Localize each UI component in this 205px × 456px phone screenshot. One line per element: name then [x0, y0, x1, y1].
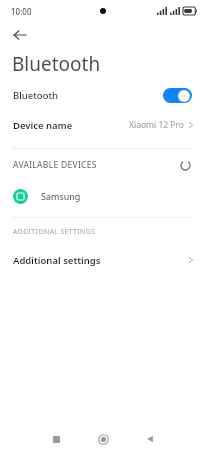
button[interactable]: Bluetooth toggle [163, 88, 192, 103]
staticText: 10:00 [11, 6, 32, 17]
button[interactable]: Additional settings [0, 246, 205, 274]
staticText: Xiaomi 12 Pro [129, 119, 184, 131]
staticText: Additional settings [13, 254, 101, 267]
staticText: Bluetooth [12, 51, 101, 77]
staticText: Bluetooth [13, 89, 59, 102]
button[interactable]: Back [7, 22, 33, 48]
button[interactable]: Home [90, 426, 116, 452]
button[interactable]: Back [137, 426, 163, 452]
button[interactable]: Samsung [0, 181, 205, 211]
button[interactable]: Bluetooth [0, 80, 205, 110]
staticText: AVAILABLE DEVICES [13, 159, 97, 171]
staticText: Device name [13, 119, 73, 132]
button[interactable]: Device name [0, 110, 205, 140]
button[interactable]: Scanning [176, 156, 194, 174]
staticText: ADDITIONAL SETTINGS [13, 227, 96, 237]
button[interactable]: Recent apps [43, 426, 69, 452]
staticText: Samsung [41, 190, 81, 202]
